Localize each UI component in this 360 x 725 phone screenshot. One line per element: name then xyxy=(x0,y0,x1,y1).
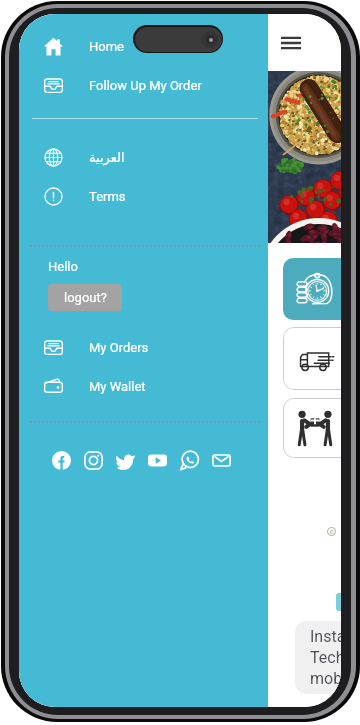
staticText: Terms xyxy=(89,189,126,204)
staticText: My Wallet xyxy=(89,379,146,394)
button[interactable]: Menu xyxy=(281,37,301,49)
staticText: My Orders xyxy=(89,340,149,355)
button[interactable]: Home xyxy=(19,30,268,63)
staticText: Home xyxy=(89,39,124,54)
button[interactable]: WhatsApp xyxy=(180,451,199,470)
button[interactable] xyxy=(283,398,341,458)
button[interactable] xyxy=(283,327,341,390)
button[interactable] xyxy=(283,258,341,320)
button[interactable]: Twitter xyxy=(116,451,135,470)
button[interactable]: العربية xyxy=(19,141,268,174)
staticText: العربية xyxy=(89,150,125,165)
button[interactable]: Instagram xyxy=(84,451,103,470)
button[interactable]: Terms xyxy=(19,180,268,213)
staticText: Follow Up My Order xyxy=(89,78,202,93)
staticText: Tech xyxy=(310,648,341,667)
button[interactable]: Follow Up My Order xyxy=(19,69,268,102)
staticText: Hello xyxy=(48,259,78,274)
button[interactable]: Insta xyxy=(295,621,341,694)
button[interactable]: YouTube xyxy=(148,451,167,470)
staticText: Insta xyxy=(310,627,341,646)
button[interactable]: logout? xyxy=(48,284,122,311)
button[interactable]: My Wallet xyxy=(19,370,268,403)
button[interactable]: My Orders xyxy=(19,331,268,364)
button[interactable]: Email xyxy=(212,451,231,470)
button[interactable]: Facebook xyxy=(52,451,71,470)
staticText: logout? xyxy=(64,290,107,305)
staticText: mob xyxy=(310,669,341,688)
staticText: c xyxy=(330,528,334,536)
